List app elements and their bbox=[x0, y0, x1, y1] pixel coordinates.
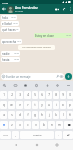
button[interactable]: j bbox=[46, 111, 52, 119]
button[interactable]: q bbox=[0, 101, 7, 109]
button[interactable]: 5 bbox=[32, 91, 38, 99]
staticText: o bbox=[62, 103, 64, 107]
button[interactable]: Back bbox=[0, 4, 7, 14]
button[interactable]: hasta bbox=[1, 57, 20, 62]
button[interactable]: ñ bbox=[67, 111, 73, 119]
button[interactable]: m bbox=[56, 121, 63, 129]
button[interactable]: 7 bbox=[46, 91, 52, 99]
staticText: 9 bbox=[62, 93, 64, 97]
button[interactable]: e bbox=[16, 101, 23, 109]
button[interactable]: r bbox=[24, 101, 31, 109]
button[interactable]: z bbox=[9, 121, 15, 129]
button[interactable]: More options bbox=[68, 4, 73, 14]
button[interactable]: hola bbox=[1, 15, 17, 20]
button[interactable]: h bbox=[39, 111, 45, 119]
button[interactable]: Shift bbox=[0, 121, 8, 129]
staticText: m bbox=[58, 123, 61, 127]
staticText: Español bbox=[33, 134, 42, 137]
staticText: r bbox=[27, 103, 29, 107]
button[interactable]: y bbox=[39, 101, 45, 109]
staticText: u bbox=[48, 103, 50, 107]
button[interactable]: GIF bbox=[13, 83, 18, 88]
button[interactable]: 9 bbox=[60, 91, 66, 99]
button[interactable]: , bbox=[12, 131, 19, 139]
button[interactable]: Settings bbox=[55, 83, 60, 88]
button[interactable]: Video call bbox=[53, 4, 61, 14]
staticText: Escribe un mensaje bbox=[6, 75, 31, 79]
button[interactable]: Search bbox=[2, 83, 7, 88]
button[interactable]: 8 bbox=[53, 91, 59, 99]
staticText: n bbox=[51, 123, 53, 127]
button[interactable]: aprovecha bbox=[1, 39, 22, 44]
button[interactable]: v bbox=[32, 121, 39, 129]
staticText: 12:43 bbox=[17, 40, 21, 43]
other: Attach bbox=[56, 75, 59, 78]
button[interactable]: Los mensajes están cifrados bbox=[18, 45, 55, 50]
staticText: nadie bbox=[2, 52, 10, 56]
staticText: i bbox=[56, 103, 57, 107]
button[interactable]: nadie bbox=[1, 51, 20, 56]
button[interactable]: Voice call bbox=[61, 4, 68, 14]
staticText: t bbox=[34, 103, 36, 107]
button[interactable]: qué haces bbox=[1, 27, 20, 32]
button[interactable]: Voice typing bbox=[45, 83, 50, 88]
button[interactable]: 0 bbox=[67, 91, 73, 99]
button[interactable]: c bbox=[24, 121, 31, 129]
staticText: 0 bbox=[69, 93, 71, 97]
button[interactable]: t bbox=[32, 101, 38, 109]
button[interactable]: i bbox=[53, 101, 59, 109]
staticText: j bbox=[49, 113, 50, 117]
button[interactable]: o bbox=[60, 101, 66, 109]
staticText: el bebé bbox=[2, 22, 12, 26]
button[interactable]: Back bbox=[12, 141, 20, 149]
button[interactable]: d bbox=[16, 111, 23, 119]
button[interactable]: Español bbox=[20, 131, 54, 139]
staticText: q bbox=[3, 103, 5, 107]
staticText: ñ bbox=[69, 113, 71, 117]
staticText: qué haces bbox=[2, 28, 16, 32]
button[interactable]: 6 bbox=[39, 91, 45, 99]
button[interactable]: w bbox=[8, 101, 15, 109]
button[interactable]: ?123 bbox=[0, 131, 11, 139]
button[interactable]: Backspace bbox=[64, 121, 73, 129]
button[interactable]: Enter bbox=[63, 131, 73, 139]
button[interactable]: Escribe un mensaje bbox=[1, 73, 64, 80]
staticText: w bbox=[10, 103, 13, 107]
button[interactable]: el bebé bbox=[1, 21, 19, 26]
button[interactable]: g bbox=[32, 111, 38, 119]
button[interactable]: f bbox=[24, 111, 31, 119]
button[interactable]: b bbox=[40, 121, 47, 129]
button[interactable]: Home bbox=[33, 141, 41, 149]
staticText: 12:41 bbox=[11, 16, 16, 19]
button[interactable]: 3 bbox=[16, 91, 23, 99]
staticText: 2 bbox=[11, 93, 13, 97]
button[interactable]: l bbox=[60, 111, 66, 119]
button[interactable]: x bbox=[16, 121, 23, 129]
staticText: 8 bbox=[55, 93, 57, 97]
staticText: g bbox=[34, 113, 36, 117]
staticText: hola bbox=[2, 16, 8, 20]
button[interactable]: Profile photo bbox=[7, 6, 14, 13]
button[interactable]: 4 bbox=[24, 91, 31, 99]
button[interactable]: a bbox=[0, 111, 7, 119]
staticText: a bbox=[3, 113, 5, 117]
button[interactable]: k bbox=[53, 111, 59, 119]
button[interactable]: n bbox=[48, 121, 55, 129]
button[interactable]: 1 bbox=[0, 91, 7, 99]
staticText: hasta bbox=[2, 58, 10, 62]
button[interactable]: p bbox=[67, 101, 73, 109]
button[interactable]: u bbox=[46, 101, 52, 109]
button[interactable]: 2 bbox=[8, 91, 15, 99]
button[interactable]: Record voice message bbox=[65, 73, 72, 80]
button[interactable]: Clipboard bbox=[34, 83, 39, 88]
button[interactable]: Estoy en clase bbox=[34, 33, 72, 38]
staticText: s bbox=[11, 113, 13, 117]
button[interactable]: s bbox=[8, 111, 15, 119]
button[interactable]: More bbox=[66, 83, 71, 88]
button[interactable]: Recent apps bbox=[53, 141, 61, 149]
button[interactable]: . bbox=[55, 131, 62, 139]
staticText: , bbox=[15, 133, 16, 137]
button[interactable]: Stickers bbox=[23, 83, 28, 88]
staticText: Estoy en clase bbox=[35, 34, 54, 38]
staticText: b bbox=[43, 123, 45, 127]
